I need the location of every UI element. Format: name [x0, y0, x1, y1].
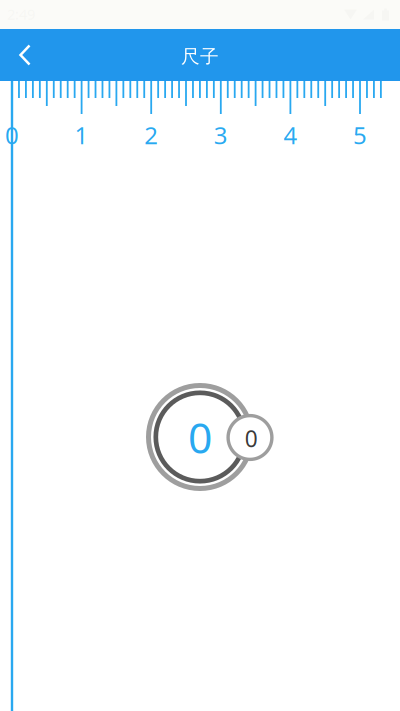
- staticText: 尺子: [181, 45, 219, 68]
- button[interactable]: Back: [0, 33, 47, 77]
- staticText: 4: [283, 119, 297, 151]
- staticText: 1: [75, 119, 89, 151]
- staticText: 3: [214, 119, 228, 151]
- staticText: 0: [245, 423, 258, 453]
- staticText: 5: [353, 119, 367, 151]
- staticText: 0: [5, 119, 19, 151]
- staticText: 0: [188, 409, 212, 465]
- staticText: 2: [144, 119, 158, 151]
